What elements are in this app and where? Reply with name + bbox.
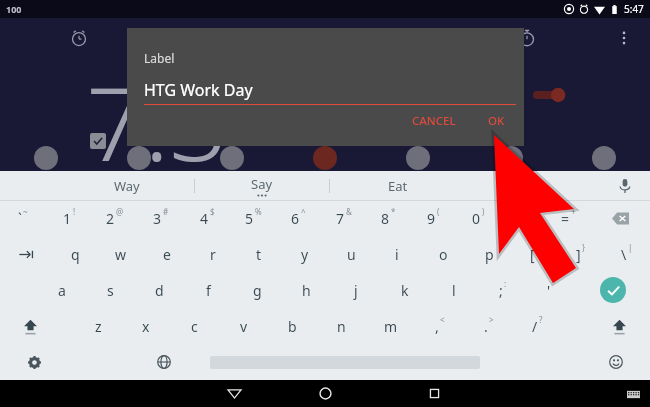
button[interactable]: ; (478, 272, 527, 308)
staticText: 7 (336, 209, 345, 228)
staticText: 8 (381, 209, 390, 228)
staticText: " (552, 278, 556, 289)
staticText: \ (621, 245, 627, 264)
button[interactable]: More options (602, 18, 646, 58)
staticText: ] (576, 245, 581, 264)
button[interactable]: Back (212, 380, 256, 407)
button[interactable]: Clock (153, 18, 302, 58)
staticText: Say (251, 175, 273, 193)
staticText: i (395, 245, 399, 264)
button[interactable]: 0 (456, 201, 501, 236)
staticText: y (301, 245, 309, 264)
staticText: } (582, 242, 586, 253)
button[interactable]: ] (558, 236, 604, 272)
staticText: u (347, 245, 356, 264)
button[interactable]: Voice input (600, 171, 650, 201)
button[interactable]: g (233, 272, 282, 308)
button[interactable]: 6 (276, 201, 321, 236)
button[interactable]: Enter (576, 272, 650, 308)
button[interactable]: j (331, 272, 380, 308)
button[interactable]: Backspace (591, 201, 650, 236)
button[interactable]: ' (527, 272, 576, 308)
button[interactable]: u (328, 236, 374, 272)
staticText: > (489, 314, 494, 325)
button[interactable]: = (546, 201, 591, 236)
staticText: 4 (200, 209, 209, 228)
button[interactable]: Tab (0, 236, 52, 272)
staticText: - (519, 209, 524, 228)
button[interactable]: 5 (230, 201, 276, 236)
button[interactable]: s (86, 272, 135, 308)
staticText: h (302, 281, 311, 300)
button[interactable]: a (37, 272, 86, 308)
button[interactable] (198, 344, 492, 380)
button[interactable]: Home (303, 380, 347, 407)
button[interactable]: o (420, 236, 466, 272)
button[interactable]: Shift (0, 308, 60, 344)
button[interactable]: v (219, 308, 268, 344)
button[interactable]: Stopwatch (452, 18, 602, 58)
button[interactable]: - (501, 201, 546, 236)
button[interactable]: z (74, 308, 122, 344)
button[interactable]: e (144, 236, 190, 272)
button[interactable]: Way (60, 171, 194, 201)
staticText: . (484, 317, 488, 336)
button[interactable]: c (170, 308, 219, 344)
button[interactable]: CANCEL (403, 108, 465, 134)
button[interactable]: k (380, 272, 429, 308)
button[interactable]: b (268, 308, 317, 344)
staticText: / (532, 317, 538, 336)
button[interactable]: Emoji (582, 344, 650, 380)
button[interactable]: \ (604, 236, 650, 272)
button[interactable]: 1 (46, 201, 92, 236)
button[interactable]: Timer (302, 18, 452, 58)
button[interactable]: x (122, 308, 170, 344)
staticText: ^ (301, 206, 306, 217)
staticText: k (401, 281, 409, 300)
staticText: 5 (245, 209, 254, 228)
button[interactable]: Alarm (4, 18, 153, 58)
button[interactable]: . (464, 308, 513, 344)
staticText: Eat (388, 177, 408, 195)
button[interactable]: r (190, 236, 236, 272)
button[interactable]: Settings (0, 344, 68, 380)
staticText: $ (210, 206, 215, 217)
button[interactable]: 4 (184, 201, 230, 236)
button[interactable]: n (317, 308, 366, 344)
button[interactable]: 2 (92, 201, 138, 236)
button[interactable]: y (282, 236, 328, 272)
button[interactable]: d (135, 272, 184, 308)
button[interactable]: ` (0, 201, 46, 236)
button[interactable]: i (374, 236, 420, 272)
button[interactable]: Recents (412, 380, 456, 407)
staticText: q (71, 245, 80, 264)
button[interactable]: OK (479, 108, 514, 134)
button[interactable]: Say (195, 171, 329, 201)
staticText: a (58, 281, 66, 300)
staticText: x (142, 317, 150, 336)
button[interactable]: w (98, 236, 144, 272)
button[interactable]: 8 (366, 201, 411, 236)
button[interactable]: [ (512, 236, 558, 272)
staticText: + (571, 206, 576, 217)
staticText: OK (488, 113, 505, 129)
button[interactable]: Eat (330, 171, 465, 201)
staticText: | (628, 242, 633, 253)
button[interactable]: Shift (589, 308, 650, 344)
staticText: < (440, 314, 445, 325)
staticText: Label (144, 50, 175, 66)
button[interactable]: Change keyboard (130, 344, 198, 380)
button[interactable]: h (282, 272, 331, 308)
button[interactable]: / (513, 308, 562, 344)
button[interactable]: q (52, 236, 98, 272)
button[interactable]: , (415, 308, 464, 344)
button[interactable]: p (466, 236, 512, 272)
button[interactable]: f (184, 272, 233, 308)
button[interactable]: 3 (138, 201, 184, 236)
button[interactable]: 9 (411, 201, 456, 236)
button[interactable]: 7 (321, 201, 366, 236)
button[interactable]: t (236, 236, 282, 272)
button[interactable]: l (429, 272, 478, 308)
button[interactable]: m (366, 308, 415, 344)
staticText: HTG Work Day (144, 79, 253, 101)
